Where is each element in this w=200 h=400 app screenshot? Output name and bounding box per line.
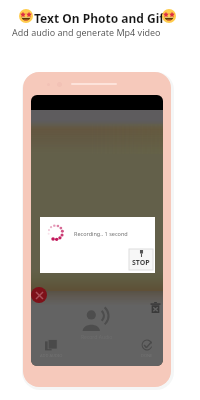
button[interactable]: Record Audio <box>74 308 120 338</box>
staticText: Add audio and generate Mp4 video <box>12 26 161 38</box>
button[interactable]: Delete <box>148 300 162 314</box>
staticText: Text On Photo and Gif <box>34 10 164 26</box>
staticText: Recording.. 1 second <box>74 230 128 237</box>
button[interactable]: Close <box>31 287 47 303</box>
button[interactable]: STOP <box>129 249 153 270</box>
button[interactable]: DONE <box>134 339 160 356</box>
button[interactable]: ADD AUDIO <box>38 339 64 356</box>
staticText: STOP <box>132 258 150 268</box>
staticText: ADD AUDIO <box>40 353 63 358</box>
